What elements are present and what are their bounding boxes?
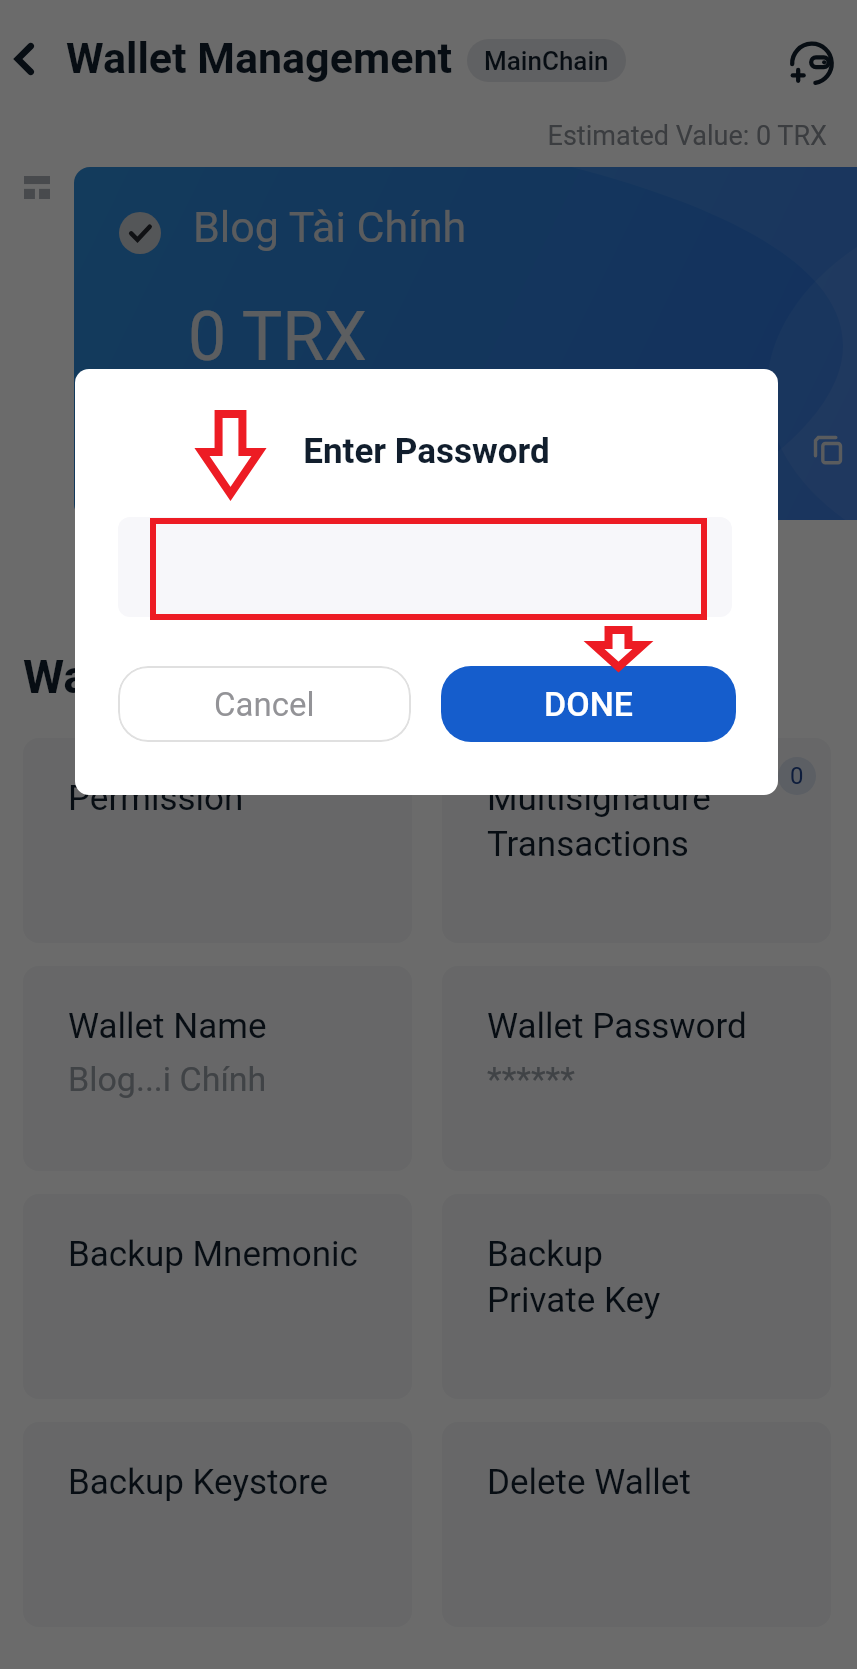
- staticText: Blog...i Chính: [68, 1059, 267, 1099]
- staticText: Permission: [68, 778, 244, 819]
- staticText: Wallet Name: [68, 1006, 267, 1047]
- staticText: Cancel: [214, 685, 315, 724]
- staticText: MainChain: [484, 46, 609, 76]
- staticText: 0: [790, 762, 804, 790]
- staticText: Wallet Management: [23, 649, 445, 704]
- button[interactable]: Back: [2, 35, 50, 83]
- button[interactable]: MainChain: [467, 39, 626, 82]
- button[interactable]: Wallet Password: [442, 966, 831, 1171]
- staticText: Wallet Password: [487, 1006, 747, 1047]
- button[interactable]: Delete Wallet: [442, 1422, 831, 1627]
- staticText: DONE: [544, 684, 634, 724]
- staticText: Wallet Management: [66, 33, 453, 83]
- button[interactable]: Wallet Name: [23, 966, 412, 1171]
- staticText: Backup Mnemonic: [68, 1234, 358, 1275]
- staticText: Backup Private Key: [487, 1234, 661, 1321]
- button[interactable]: Blog Tài Chính: [74, 167, 857, 520]
- staticText: Delete Wallet: [487, 1462, 691, 1503]
- staticText: Enter Password: [75, 431, 778, 472]
- button[interactable]: Permission: [23, 738, 412, 943]
- staticText: Estimated Value: 0 TRX: [0, 120, 827, 152]
- button[interactable]: Backup Mnemonic: [23, 1194, 412, 1399]
- staticText: Blog Tài Chính: [193, 202, 467, 252]
- button[interactable]: Add wallet: [785, 37, 841, 93]
- button[interactable]: 0: [442, 738, 831, 943]
- button[interactable]: Backup Keystore: [23, 1422, 412, 1627]
- staticText: Backup Keystore: [68, 1462, 329, 1503]
- button[interactable]: [118, 517, 732, 617]
- button[interactable]: DONE: [441, 666, 736, 742]
- button[interactable]: Cancel: [118, 666, 411, 742]
- button[interactable]: Backup Private Key: [442, 1194, 831, 1399]
- staticText: ******: [487, 1059, 575, 1099]
- staticText: 0 TRX: [188, 297, 367, 377]
- staticText: Multisignature Transactions: [487, 778, 711, 865]
